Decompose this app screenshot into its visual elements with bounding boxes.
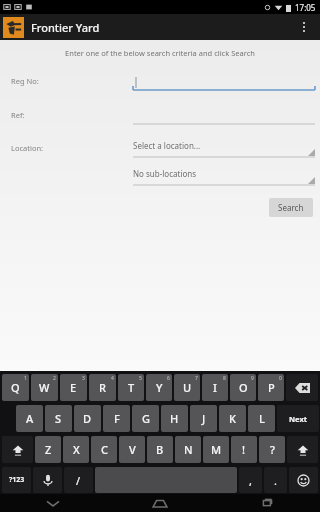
button[interactable] [133,71,315,91]
staticText: 3 [82,375,85,382]
staticText: M [211,442,222,457]
button[interactable]: A [16,405,43,432]
staticText: C [101,442,108,457]
button[interactable]: L [248,405,275,432]
button[interactable]: 7 [174,374,200,401]
staticText: 8 [223,375,226,382]
button[interactable]: N [175,436,201,463]
staticText: R [99,380,106,395]
button[interactable]: 6 [146,374,172,401]
staticText: L [259,411,265,426]
staticText: 6 [167,375,170,382]
staticText: J [202,411,206,426]
staticText: X [73,442,80,457]
staticText: A [26,411,34,426]
button[interactable]: Backspace [286,374,318,401]
staticText: , [249,473,252,488]
staticText: Ref: [11,110,25,120]
button[interactable]: F [103,405,130,432]
button[interactable]: Home [106,494,213,512]
staticText: Y [156,380,163,395]
staticText: V [129,442,136,457]
button[interactable]: 1 [2,374,29,401]
button[interactable]: Z [35,436,61,463]
button[interactable]: H [161,405,188,432]
button[interactable]: / [64,467,93,493]
staticText: No sub-locations [133,168,197,179]
staticText: N [184,442,193,457]
staticText: E [70,380,77,395]
staticText: P [268,380,275,395]
staticText: Search [278,202,304,213]
button[interactable]: V [119,436,145,463]
button[interactable] [133,105,315,125]
button[interactable]: 0 [258,374,284,401]
button[interactable]: Hide keyboard [0,494,106,512]
staticText: 0 [279,375,282,382]
staticText: B [156,442,164,457]
staticText: . [274,473,277,488]
button[interactable]: Search [269,198,313,217]
staticText: G [142,411,150,426]
button[interactable]: J [190,405,217,432]
staticText: H [170,411,179,426]
staticText: T [128,380,135,395]
staticText: 7 [195,375,198,382]
button[interactable]: ? [259,436,285,463]
staticText: Reg No: [11,76,39,86]
button[interactable]: Shift [287,436,318,463]
button[interactable]: More options [292,14,316,40]
staticText: 17:05 [295,2,316,13]
button[interactable]: Select a location... [133,138,315,158]
button[interactable]: 5 [118,374,144,401]
staticText: D [83,411,92,426]
button[interactable]: , [239,467,262,493]
button[interactable]: 3 [60,374,87,401]
button[interactable]: Shift [2,436,33,463]
staticText: Z [45,442,52,457]
staticText: 9 [251,375,254,382]
button[interactable]: ?123 [2,467,31,493]
staticText: Next [289,414,308,424]
staticText: S [55,411,62,426]
button[interactable]: D [74,405,101,432]
staticText: ! [242,442,246,457]
staticText: / [76,473,81,488]
button[interactable]: M [203,436,229,463]
button[interactable]: B [147,436,173,463]
staticText: Q [11,380,20,395]
button[interactable]: . [264,467,287,493]
staticText: I [213,380,217,395]
staticText: F [114,411,120,426]
staticText: ? [270,442,275,457]
staticText: ?123 [9,475,25,485]
button[interactable]: ! [231,436,257,463]
staticText: Frontier Yard [31,20,100,35]
button[interactable]: Next [277,405,319,432]
staticText: U [183,380,192,395]
button[interactable]: X [63,436,89,463]
button[interactable]: 8 [202,374,228,401]
staticText: W [39,380,50,395]
staticText: Select a location... [133,140,201,151]
button[interactable]: 9 [230,374,256,401]
button[interactable]: G [132,405,159,432]
button[interactable]: Emoji [289,467,318,493]
button[interactable]: 2 [31,374,58,401]
button[interactable]: Recent apps [213,494,320,512]
staticText: 5 [139,375,142,382]
button[interactable]: 4 [89,374,116,401]
button[interactable]: C [91,436,117,463]
button[interactable]: No sub-locations [133,166,315,186]
staticText: O [239,380,248,395]
staticText: Location: [11,143,44,153]
button[interactable]: Voice input [33,467,62,493]
staticText: 1 [24,375,27,382]
staticText: 4 [111,375,114,382]
staticText: 2 [53,375,56,382]
button[interactable]: S [45,405,72,432]
button[interactable]: K [219,405,246,432]
staticText: K [229,411,236,426]
staticText: Enter one of the below search criteria a… [0,48,320,58]
